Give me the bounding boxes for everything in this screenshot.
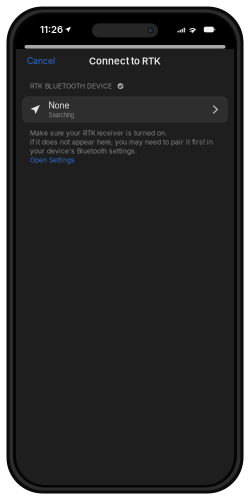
button[interactable]: None xyxy=(22,96,228,123)
staticText: Connect to RTK xyxy=(89,55,161,67)
staticText: Open Settings xyxy=(30,156,75,164)
staticText: Make sure your RTK receiver is turned on… xyxy=(30,129,167,137)
button[interactable]: Open Settings xyxy=(30,156,75,164)
button[interactable]: Cancel xyxy=(22,52,60,70)
staticText: RTK BLUETOOTH DEVICE xyxy=(30,82,112,90)
staticText: Cancel xyxy=(27,56,55,66)
staticText: If it does not appear here, you may need… xyxy=(30,138,213,146)
staticText: your device's Bluetooth settings. xyxy=(30,147,137,155)
staticText: 11:26 xyxy=(40,24,63,35)
staticText: None xyxy=(48,100,69,110)
staticText: Searching xyxy=(48,112,74,119)
